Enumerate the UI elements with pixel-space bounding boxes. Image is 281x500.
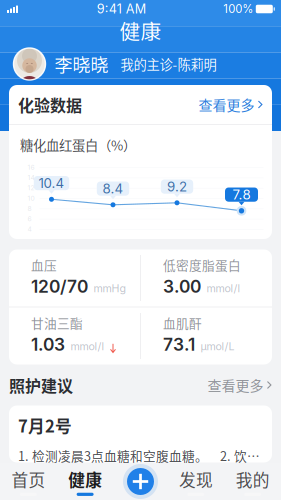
staticText: mmol/l (206, 282, 240, 295)
staticText: 照护建议 (9, 373, 73, 397)
staticText: 8 (27, 204, 31, 213)
button[interactable]: 首页 (0, 463, 57, 500)
staticText: 查看更多 (207, 375, 263, 395)
staticText: 1.03 (31, 334, 65, 355)
staticText: 10 (27, 194, 34, 202)
staticText: 低密度脂蛋白 (163, 255, 241, 274)
staticText: 120/70 (31, 276, 88, 297)
staticText: 化验数据 (18, 93, 82, 116)
staticText: 100% (223, 2, 253, 16)
staticText: 首页 (11, 467, 45, 491)
staticText: 9.2 (167, 178, 187, 195)
staticText: 血压 (31, 255, 57, 274)
staticText: 73.1 (163, 334, 195, 355)
button[interactable]: 发现 (167, 463, 224, 500)
button[interactable]: 添加 (113, 463, 167, 500)
staticText: μmol/L (200, 340, 234, 353)
staticText: 健康 (68, 467, 102, 491)
staticText: 9:41 AM (97, 1, 146, 17)
staticText: 8.4 (102, 180, 123, 197)
button[interactable]: 我的 (224, 463, 281, 500)
staticText: 3.00 (163, 276, 201, 297)
staticText: 血肌酐 (163, 313, 202, 332)
staticText: 7月2号 (18, 413, 72, 437)
staticText: 6 (27, 215, 31, 223)
staticText: 10.4 (38, 175, 64, 191)
button[interactable]: 健康 (57, 463, 114, 500)
staticText: 4 (27, 225, 31, 233)
staticText: 糖化血红蛋白（%） (20, 135, 136, 154)
button[interactable]: 照护建议 (0, 364, 281, 405)
button[interactable]: 化验数据 (9, 85, 272, 124)
staticText: 14 (27, 174, 34, 182)
staticText: 我的主诊-陈莉明 (120, 54, 216, 74)
staticText: 7.8 (232, 186, 250, 203)
staticText: 健康 (119, 15, 161, 45)
staticText: 我的 (236, 467, 270, 491)
staticText: 16 (27, 163, 34, 171)
staticText: mmHg (93, 282, 126, 295)
staticText: 李晓晓 (54, 51, 108, 77)
staticText: 查看更多 (198, 94, 254, 115)
staticText: mmol/l (70, 340, 104, 353)
staticText: 发现 (179, 467, 213, 491)
staticText: 12 (27, 184, 34, 192)
staticText: 甘油三酯 (31, 313, 83, 332)
staticText: 1. 检测凌晨3点血糖和空腹血糖。 2. 饮食上注意 (18, 446, 270, 465)
